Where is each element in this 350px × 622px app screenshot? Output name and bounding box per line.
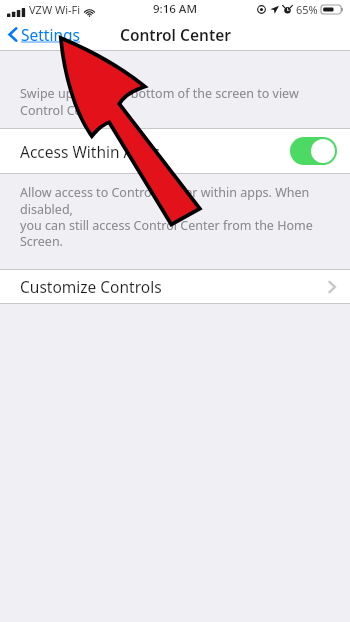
staticText: Customize Controls [20,276,162,297]
staticText: 9:16 AM [153,1,197,17]
staticText: Swipe up from the bottom of the screen t… [20,85,299,118]
button[interactable]: Customize Controls [0,270,350,303]
staticText: Allow access to Control Center within ap… [20,184,336,249]
button[interactable]: Access Within Apps toggle, on [290,137,337,165]
staticText: Control Center [120,24,231,45]
button[interactable]: Access Within Apps [0,129,350,173]
button[interactable]: Settings [0,20,90,49]
staticText: 65% [296,2,318,17]
staticText: Settings [21,24,80,45]
staticText: VZW Wi-Fi [29,2,81,17]
staticText: Access Within Apps [20,141,160,162]
